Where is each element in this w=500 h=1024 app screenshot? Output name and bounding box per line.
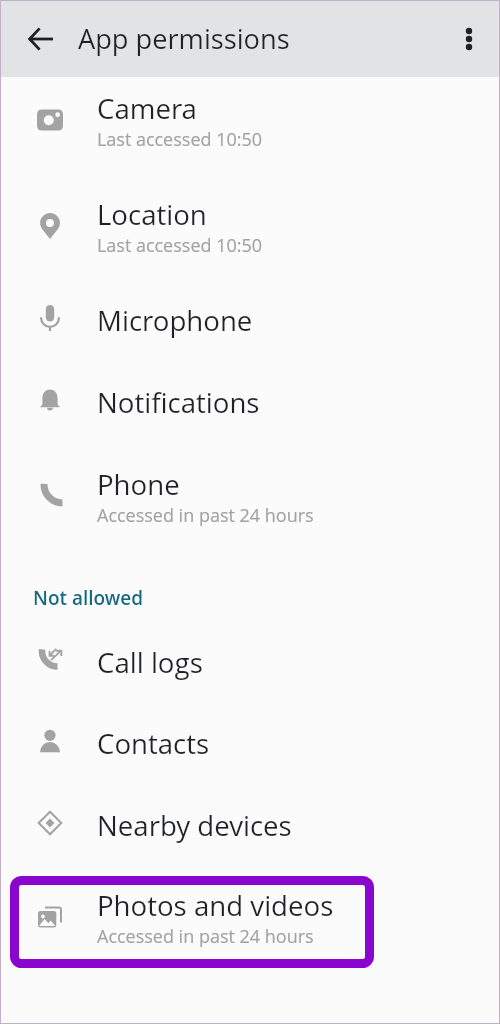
button[interactable]: Phone permission	[0, 445, 500, 537]
other: Camera permission	[34, 104, 66, 136]
other: Nearby devices permission	[34, 807, 66, 839]
staticText: Notifications	[97, 383, 260, 421]
staticText: Not allowed	[33, 585, 144, 611]
staticText: Photos and videos	[97, 886, 334, 924]
button[interactable]: Call logs permission	[0, 623, 500, 695]
staticText: Location	[97, 195, 207, 233]
other: Notifications permission	[34, 384, 66, 416]
button[interactable]: Camera permission	[0, 69, 500, 161]
staticText: Accessed in past 24 hours	[97, 503, 314, 528]
staticText: Nearby devices	[97, 806, 292, 844]
button[interactable]: Photos and videos permission	[0, 866, 500, 958]
staticText: App permissions	[78, 20, 290, 57]
button[interactable]: Nearby devices permission	[0, 786, 500, 858]
staticText: Last accessed 10:50	[97, 233, 263, 258]
staticText: Camera	[97, 89, 197, 127]
button[interactable]: Back	[19, 17, 63, 61]
other: Phone permission	[34, 480, 66, 512]
button[interactable]: Location permission	[0, 175, 500, 267]
button[interactable]: Contacts permission	[0, 704, 500, 776]
other: Location permission	[34, 210, 66, 242]
button[interactable]: Microphone permission	[0, 281, 500, 353]
staticText: Accessed in past 24 hours	[97, 924, 314, 949]
staticText: Last accessed 10:50	[97, 127, 263, 152]
other: Microphone permission	[34, 302, 66, 334]
other: Photos and videos permission	[34, 901, 66, 933]
other: Call logs permission	[34, 644, 66, 676]
staticText: Call logs	[97, 643, 203, 681]
staticText: Phone	[97, 465, 180, 503]
other: Contacts permission	[34, 725, 66, 757]
staticText: Contacts	[97, 724, 210, 762]
staticText: Microphone	[97, 301, 253, 339]
button[interactable]: Notifications permission	[0, 363, 500, 435]
button[interactable]: More options	[449, 19, 489, 59]
